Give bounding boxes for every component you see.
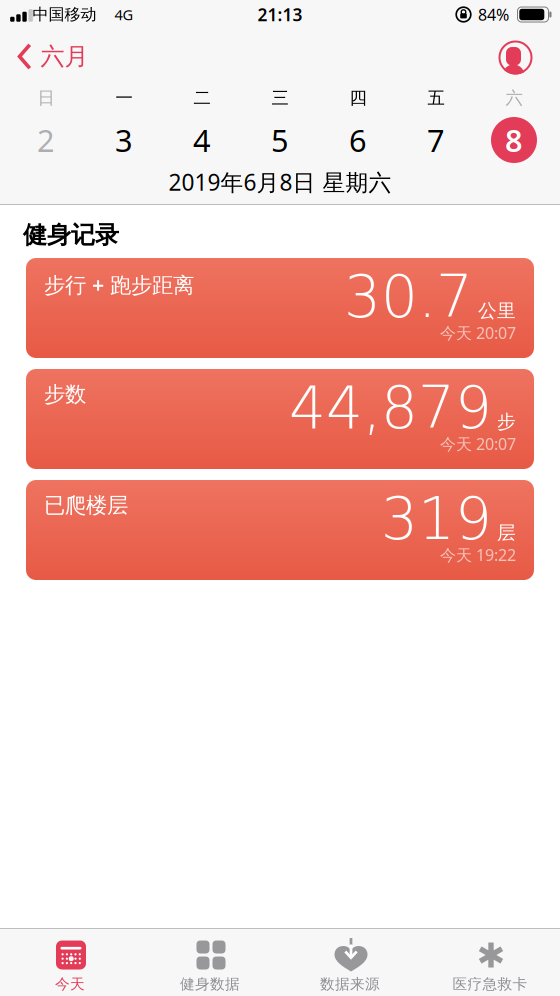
staticText: 今天 bbox=[55, 975, 85, 993]
button[interactable]: 步数 bbox=[26, 369, 534, 469]
staticText: 319 bbox=[381, 485, 492, 553]
staticText: 中国移动 bbox=[32, 5, 96, 24]
staticText: 44,879 bbox=[289, 374, 492, 442]
button[interactable]: 健身数据 bbox=[140, 929, 280, 996]
staticText: 2 bbox=[37, 120, 55, 160]
button[interactable]: 今天 bbox=[0, 929, 140, 996]
staticText: 7 bbox=[427, 120, 445, 160]
button[interactable] bbox=[498, 40, 532, 74]
staticText: 层 bbox=[497, 521, 516, 544]
staticText: 4 bbox=[193, 120, 211, 160]
staticText: 今天 20:07 bbox=[440, 322, 516, 343]
staticText: 30.7 bbox=[344, 263, 473, 331]
staticText: 六 bbox=[505, 87, 522, 109]
staticText: 3 bbox=[115, 120, 133, 160]
staticText: 公里 bbox=[478, 299, 516, 322]
staticText: 健身记录 bbox=[23, 220, 119, 250]
staticText: 步 bbox=[497, 410, 516, 433]
staticText: 医疗急救卡 bbox=[452, 975, 527, 993]
staticText: 84% bbox=[478, 4, 509, 25]
button[interactable]: 3 bbox=[85, 114, 163, 166]
staticText: 六月 bbox=[40, 42, 88, 71]
staticText: 今天 20:07 bbox=[440, 433, 516, 454]
staticText: 步行 + 跑步距离 bbox=[44, 270, 194, 298]
staticText: 数据来源 bbox=[320, 975, 380, 993]
staticText: 四 bbox=[349, 87, 366, 109]
staticText: 健身数据 bbox=[180, 975, 240, 993]
staticText: 步数 bbox=[44, 381, 86, 407]
button[interactable]: 7 bbox=[397, 114, 475, 166]
button[interactable]: 2 bbox=[7, 114, 85, 166]
staticText: 5 bbox=[271, 120, 289, 160]
staticText: 今天 19:22 bbox=[440, 544, 516, 565]
staticText: 已爬楼层 bbox=[44, 492, 128, 518]
staticText: 2019年6月8日 星期六 bbox=[168, 167, 391, 197]
staticText: 8 bbox=[505, 120, 523, 160]
button[interactable]: 4 bbox=[163, 114, 241, 166]
button[interactable]: 8 bbox=[475, 114, 553, 166]
staticText: 4G bbox=[114, 5, 133, 24]
button[interactable]: 医疗急救卡 bbox=[420, 929, 560, 996]
staticText: 6 bbox=[349, 120, 367, 160]
staticText: 21:13 bbox=[257, 3, 302, 26]
staticText: 日 bbox=[37, 87, 54, 109]
button[interactable]: 6 bbox=[319, 114, 397, 166]
staticText: 三 bbox=[271, 87, 288, 109]
button[interactable]: 步行 + 跑步距离 bbox=[26, 258, 534, 358]
button[interactable]: 数据来源 bbox=[280, 929, 420, 996]
staticText: 一 bbox=[115, 87, 132, 109]
button[interactable]: 5 bbox=[241, 114, 319, 166]
button[interactable]: 六月 bbox=[17, 42, 88, 71]
button[interactable]: 已爬楼层 bbox=[26, 480, 534, 580]
staticText: 五 bbox=[427, 87, 444, 109]
staticText: 二 bbox=[193, 87, 210, 109]
